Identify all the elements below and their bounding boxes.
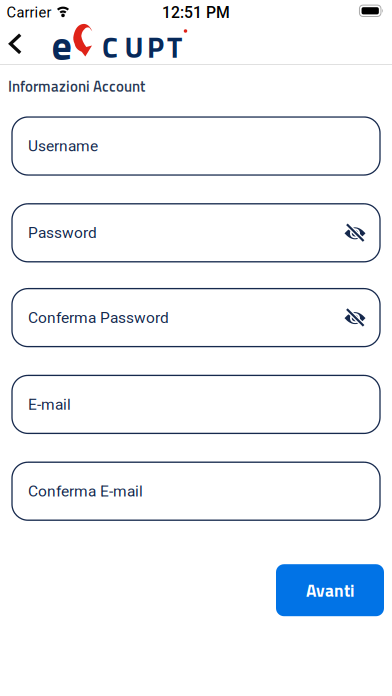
- staticText: Avanti: [306, 577, 354, 603]
- button[interactable]: Password: [12, 204, 380, 262]
- button[interactable]: Mostra Password: [344, 223, 366, 243]
- staticText: Conferma E-mail: [28, 482, 143, 500]
- button[interactable]: Mostra Conferma Password: [344, 308, 366, 328]
- staticText: T: [167, 25, 182, 69]
- staticText: Username: [28, 137, 98, 155]
- button[interactable]: Avanti: [276, 564, 384, 616]
- button[interactable]: Conferma E-mail: [12, 462, 380, 520]
- staticText: Carrier: [6, 4, 51, 21]
- staticText: 12:51 PM: [162, 3, 230, 22]
- staticText: E-mail: [28, 395, 71, 413]
- staticText: C: [102, 25, 118, 69]
- button[interactable]: E-mail: [12, 375, 380, 433]
- staticText: P: [147, 25, 164, 69]
- staticText: e: [51, 15, 71, 75]
- button[interactable]: Conferma Password: [12, 289, 380, 347]
- staticText: Password: [28, 224, 97, 242]
- staticText: Conferma Password: [28, 309, 169, 327]
- button[interactable]: Back: [0, 25, 30, 63]
- button[interactable]: Username: [12, 117, 380, 175]
- staticText: Informazioni Account: [8, 75, 145, 97]
- staticText: U: [124, 25, 143, 69]
